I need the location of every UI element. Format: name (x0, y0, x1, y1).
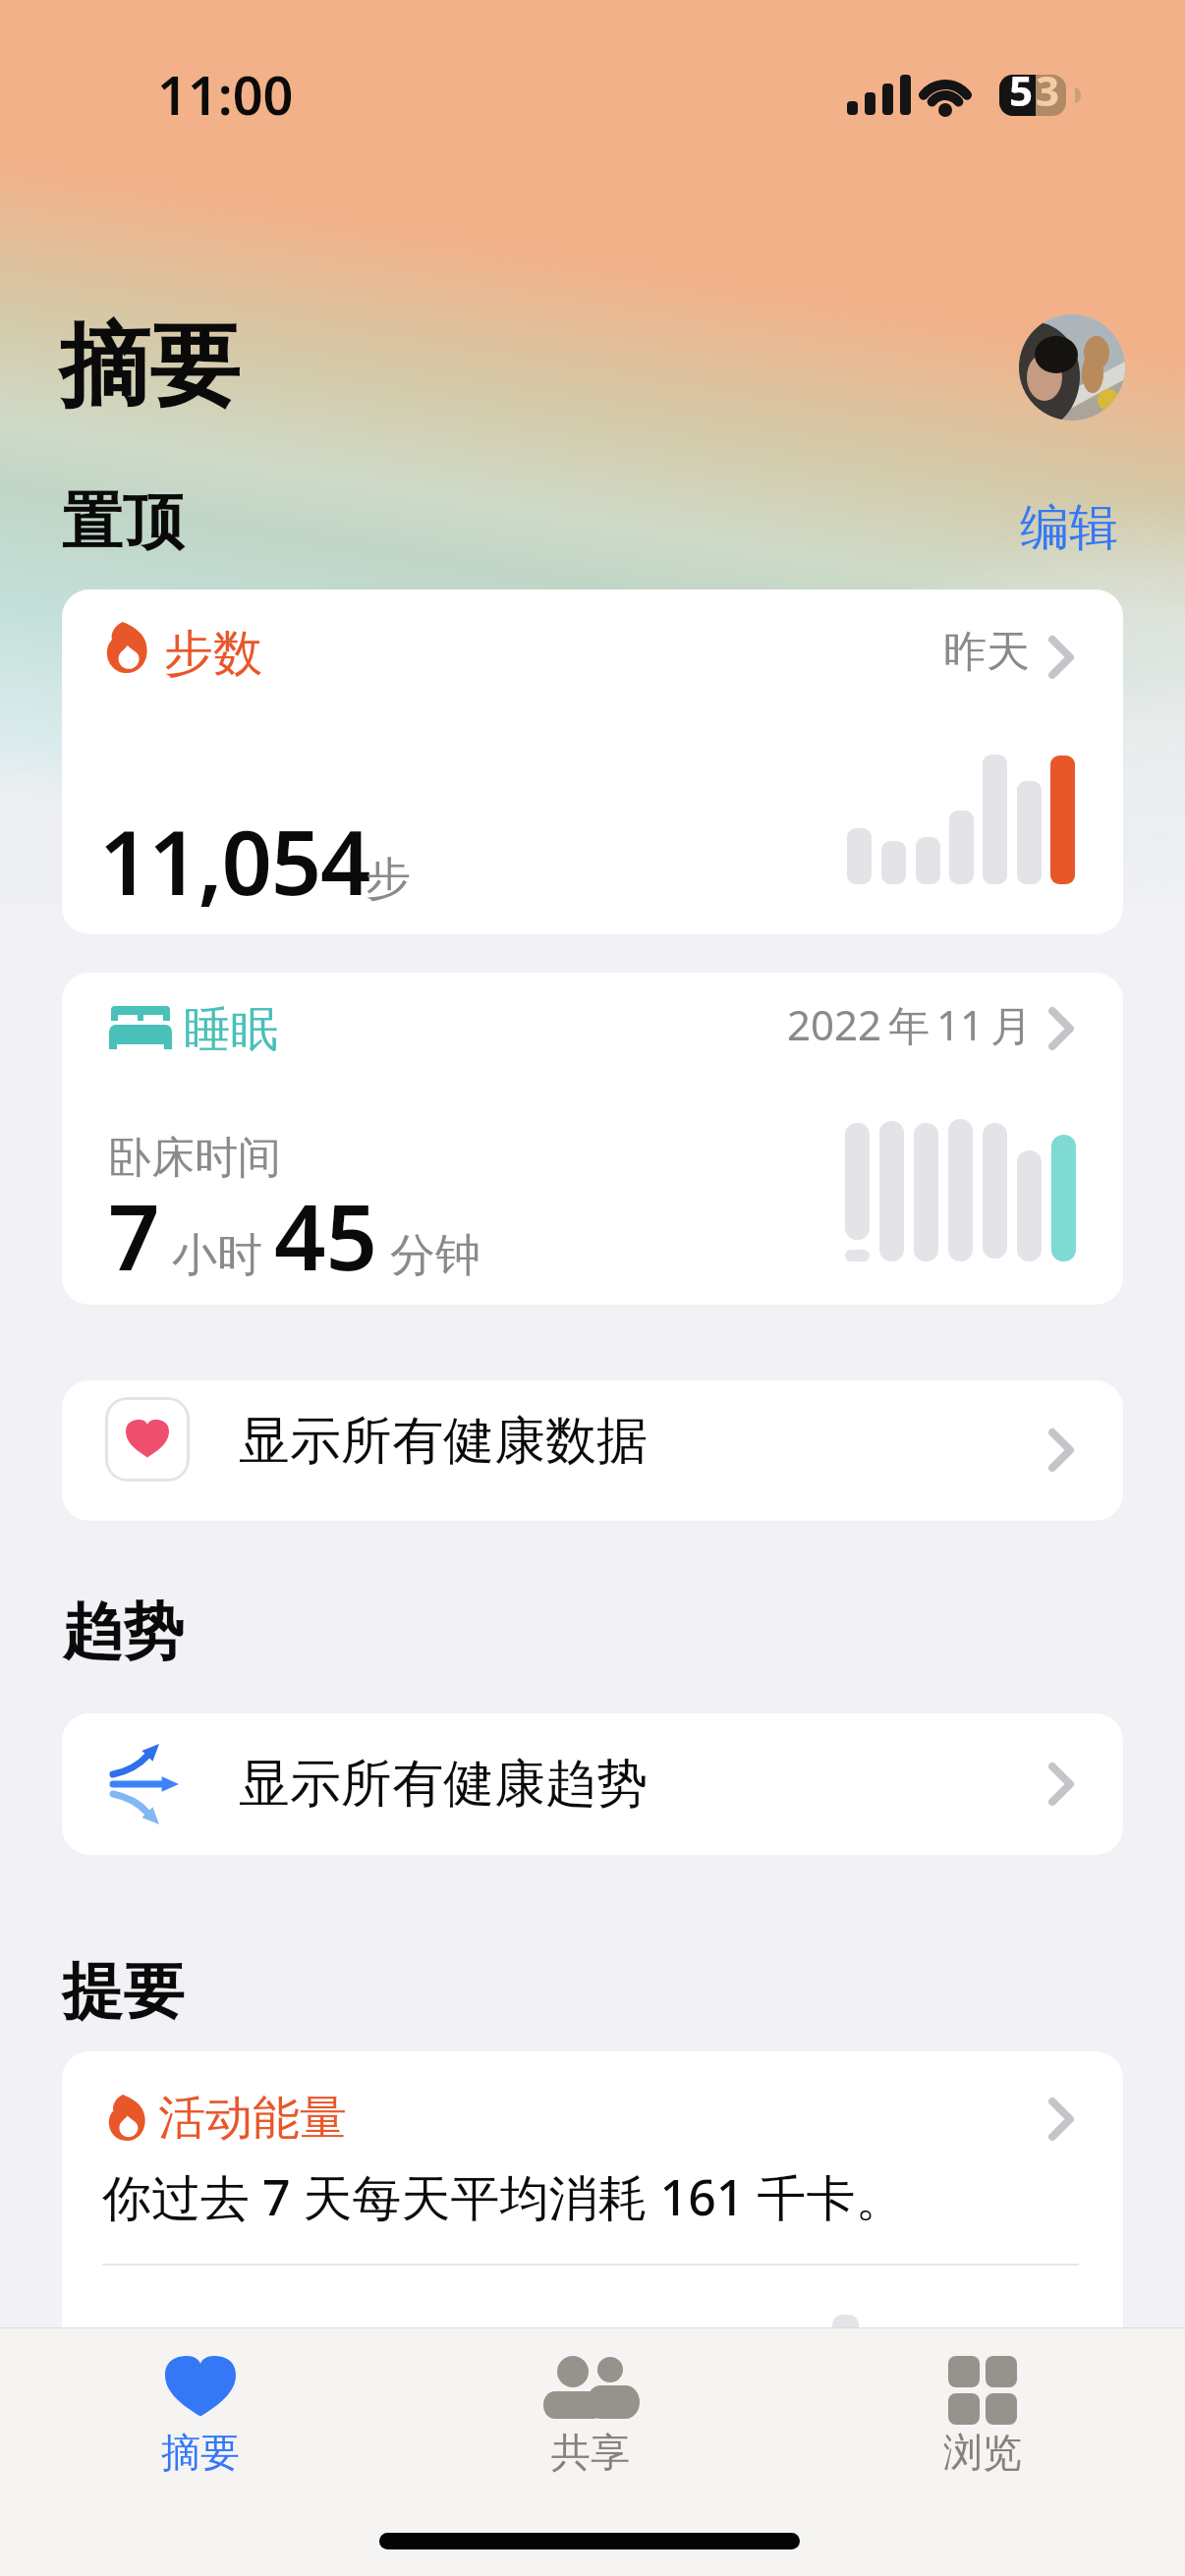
staticText: 11,054 (99, 801, 370, 922)
staticText: 共享 (551, 2428, 630, 2477)
staticText: 11:00 (157, 58, 294, 131)
button[interactable]: 步数 (62, 589, 1123, 934)
staticText: 趋势 (62, 1594, 184, 1670)
button[interactable] (1019, 314, 1125, 420)
button[interactable]: 显示所有健康趋势 (62, 1713, 1123, 1855)
button[interactable]: 显示所有健康数据 (62, 1380, 1123, 1521)
staticText: 步数 (164, 623, 262, 685)
button[interactable]: 睡眠 (62, 973, 1123, 1305)
staticText: 5 (1009, 62, 1034, 118)
button[interactable]: 浏览 (881, 2337, 1088, 2494)
staticText: 7 (108, 1174, 160, 1297)
staticText: 45 (274, 1174, 378, 1297)
staticText: 小时 (160, 1222, 274, 1284)
staticText: 编辑 (1020, 497, 1118, 559)
staticText: 活动能量 (158, 2089, 347, 2148)
staticText: 摘要 (161, 2428, 240, 2477)
button[interactable]: 摘要 (98, 2337, 305, 2494)
staticText: 步 (366, 851, 411, 908)
staticText: 睡眠 (184, 1000, 278, 1059)
staticText: 昨天 (943, 625, 1030, 679)
button[interactable]: 编辑 (1012, 491, 1130, 560)
staticText: 3 (1036, 62, 1060, 118)
button[interactable]: 共享 (489, 2337, 696, 2494)
staticText: 显示所有健康趋势 (239, 1752, 648, 1817)
staticText: 2022 年 11 月 (787, 996, 1033, 1052)
staticText: 分钟 (378, 1222, 480, 1284)
staticText: 置顶 (62, 483, 184, 560)
staticText: 你过去 7 天每天平均消耗 161 千卡。 (102, 2163, 905, 2230)
staticText: 摘要 (59, 309, 240, 423)
staticText: 卧床时间 (108, 1131, 281, 1185)
staticText: 提要 (62, 1953, 184, 2030)
button[interactable]: 活动能量 (62, 2051, 1123, 2576)
staticText: 浏览 (943, 2428, 1022, 2477)
staticText: 显示所有健康数据 (239, 1409, 648, 1474)
